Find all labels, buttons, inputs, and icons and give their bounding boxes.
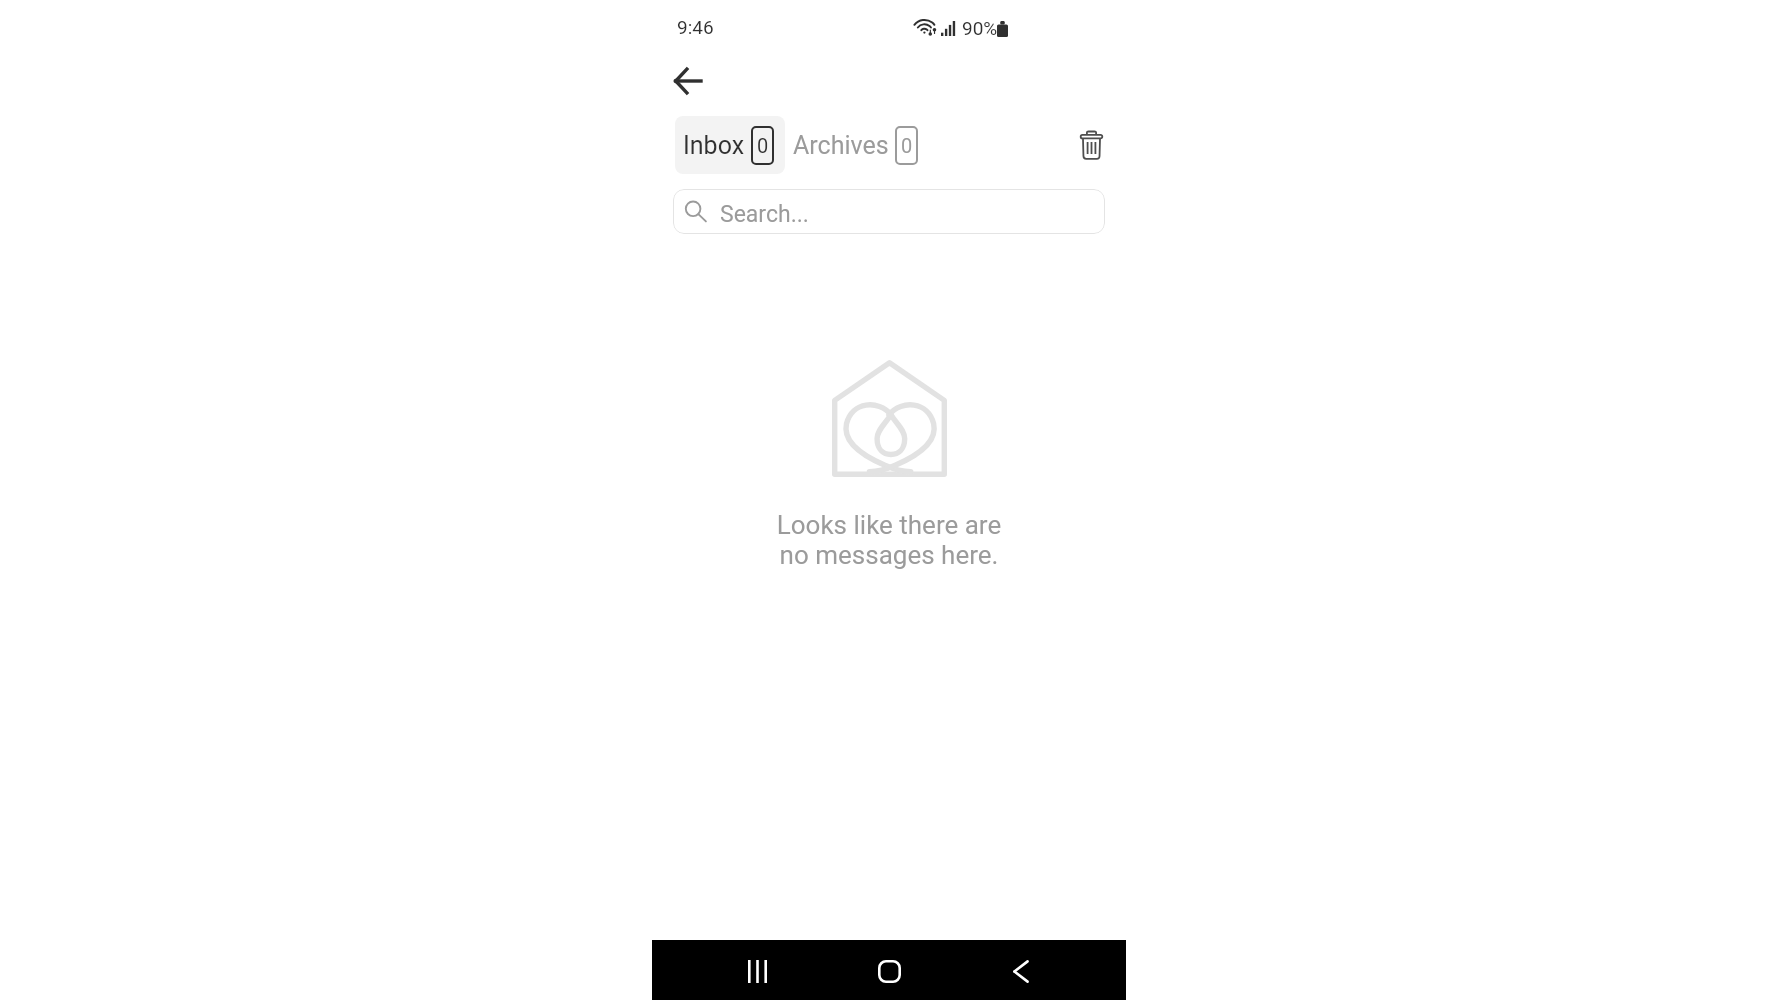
- button[interactable]: Recents: [735, 952, 779, 990]
- staticText: 90%: [962, 17, 998, 39]
- button[interactable]: Back: [664, 57, 712, 105]
- staticText: 0: [901, 134, 913, 157]
- button[interactable]: Delete: [1068, 122, 1114, 168]
- button[interactable]: Home: [867, 952, 911, 990]
- button[interactable]: Search...: [673, 189, 1105, 234]
- staticText: 9:46: [677, 16, 714, 38]
- button[interactable]: Go back: [999, 952, 1043, 990]
- button[interactable]: Inbox: [675, 116, 785, 174]
- staticText: Inbox: [683, 131, 745, 160]
- staticText: Looks like there are no messages here.: [652, 510, 1126, 570]
- button[interactable]: Archives: [785, 116, 918, 174]
- staticText: 0: [757, 134, 769, 157]
- staticText: Archives: [793, 131, 889, 160]
- staticText: Search...: [720, 201, 809, 228]
